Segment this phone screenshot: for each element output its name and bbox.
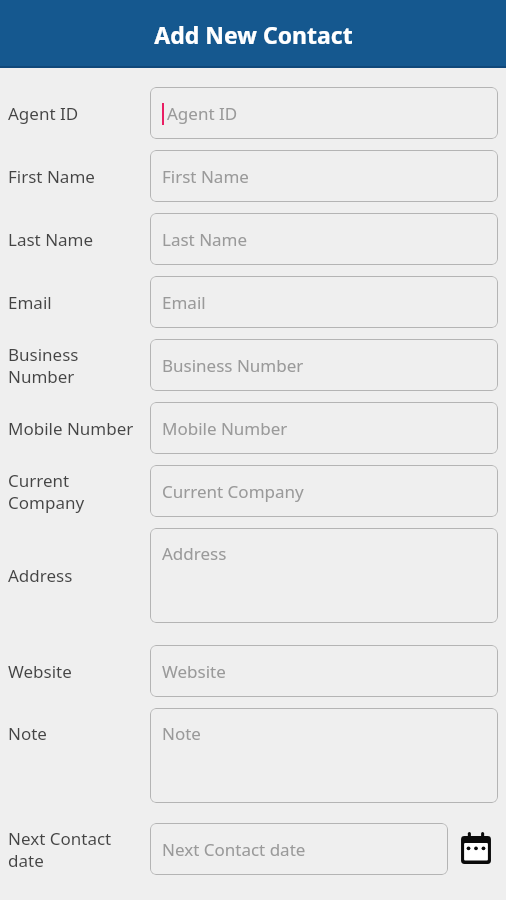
staticText: Add New Contact — [154, 19, 353, 50]
staticText: Note — [8, 722, 47, 745]
staticText: Agent ID — [8, 102, 79, 125]
staticText: Address — [162, 542, 227, 565]
staticText: Current Company — [162, 480, 304, 503]
staticText: Last Name — [162, 228, 248, 251]
staticText: Business Number — [162, 354, 304, 377]
staticText: Next Contact date — [8, 827, 138, 872]
staticText: Last Name — [8, 228, 94, 251]
button[interactable]: Pick date — [454, 827, 498, 871]
staticText: Email — [162, 291, 206, 314]
button[interactable]: Email — [150, 276, 498, 328]
button[interactable]: Website — [150, 645, 498, 697]
staticText: First Name — [162, 165, 249, 188]
button[interactable]: Mobile Number — [150, 402, 498, 454]
staticText: Mobile Number — [8, 417, 134, 440]
staticText: Agent ID — [167, 102, 238, 125]
button[interactable]: Business Number — [150, 339, 498, 391]
button[interactable]: Last Name — [150, 213, 498, 265]
staticText: First Name — [8, 165, 95, 188]
staticText: Website — [162, 660, 226, 683]
button[interactable]: Current Company — [150, 465, 498, 517]
staticText: Email — [8, 291, 52, 314]
staticText: Note — [162, 722, 201, 745]
staticText: Business Number — [8, 343, 138, 388]
staticText: Mobile Number — [162, 417, 288, 440]
staticText: Address — [8, 564, 73, 587]
button[interactable]: Note — [150, 708, 498, 803]
button[interactable]: Address — [150, 528, 498, 623]
button[interactable]: Agent ID — [150, 87, 498, 139]
button[interactable]: Next Contact date — [150, 823, 448, 875]
staticText: Next Contact date — [162, 838, 306, 861]
button[interactable]: First Name — [150, 150, 498, 202]
staticText: Website — [8, 660, 72, 683]
staticText: Current Company — [8, 469, 138, 514]
